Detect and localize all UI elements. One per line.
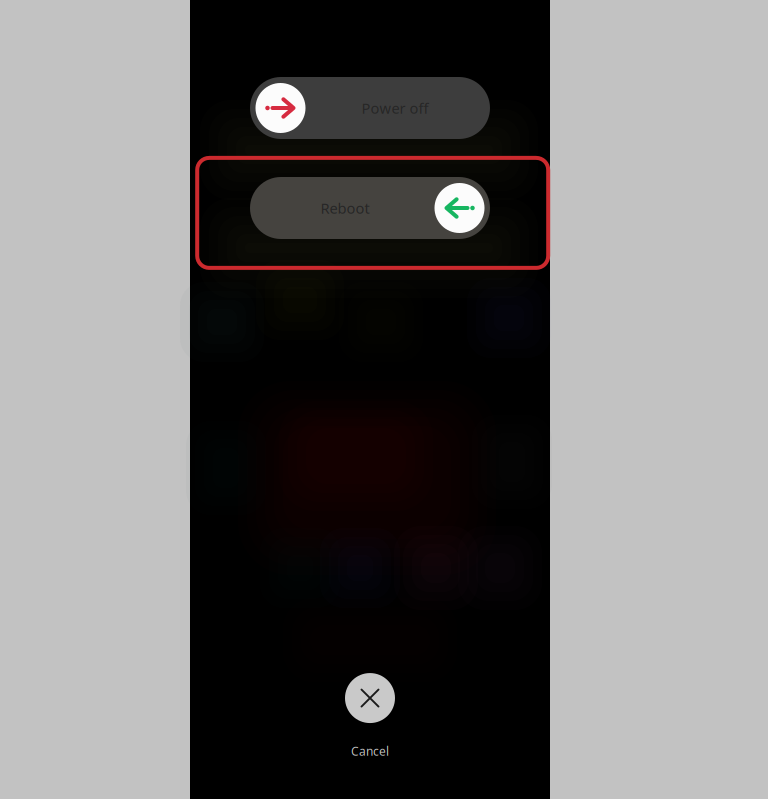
staticText: Power off (361, 98, 428, 118)
staticText: Reboot (320, 198, 369, 218)
button[interactable]: Reboot (250, 177, 490, 239)
button[interactable]: Cancel (310, 673, 430, 759)
button[interactable]: Power off (250, 77, 490, 139)
staticText: Cancel (351, 743, 389, 759)
